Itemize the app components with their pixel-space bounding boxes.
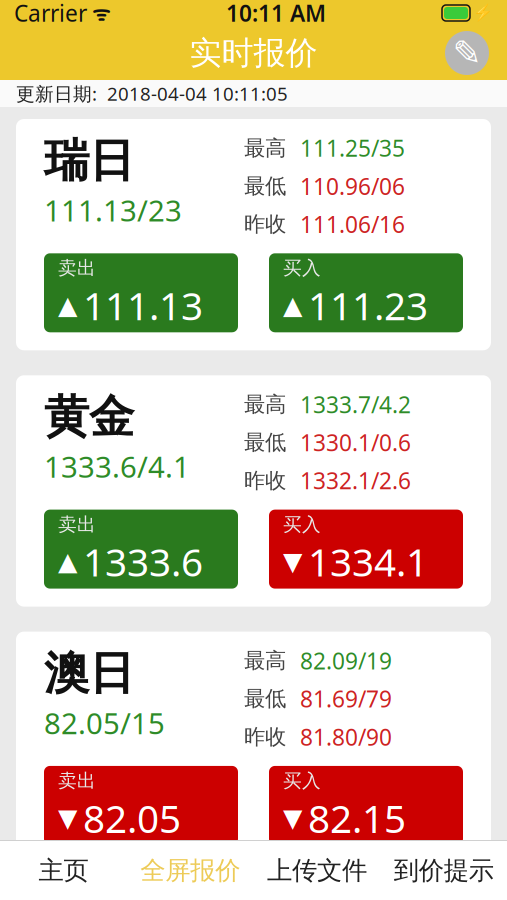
staticText: 10:11 AM [226,0,326,28]
staticText: 1332.1/2.6 [300,465,411,496]
staticText: ▼ [58,803,77,832]
staticText: 最高 [244,648,286,674]
staticText: 卖出 [58,257,96,280]
staticText: 上传文件 [267,855,367,886]
staticText: 82.09/19 [300,646,392,676]
button[interactable]: 全屏报价 [127,841,254,900]
staticText: ⚡ [473,4,493,22]
staticText: ▼ [283,803,302,832]
staticText: 1333.6/4.1 [44,447,190,486]
button[interactable]: 买入 [269,253,463,332]
button[interactable]: 卖出 [44,510,238,589]
staticText: 买入 [283,513,321,536]
staticText: 卖出 [58,513,96,536]
staticText: 到价提示 [394,855,494,886]
staticText: 买入 [283,769,321,792]
staticText: 卖出 [58,769,96,792]
staticText: ✎ [452,33,481,73]
staticText: 81.69/79 [300,684,392,714]
staticText: 111.23 [308,280,428,331]
staticText: ᯤ [87,0,110,26]
staticText: 瑞日 [44,133,134,189]
staticText: 最低 [244,173,286,199]
staticText: 1330.1/0.6 [300,427,411,457]
button[interactable]: 卖出 [44,766,238,845]
staticText: 澳日 [44,646,134,701]
staticText: 最低 [244,429,286,456]
staticText: 最高 [244,391,286,417]
button[interactable]: 买入 [269,510,463,589]
staticText: 111.06/16 [300,209,405,239]
button[interactable]: 主页 [0,841,127,900]
staticText: 1333.6 [83,536,203,587]
staticText: 昨收 [244,724,286,750]
staticText: Carrier [14,0,87,28]
staticText: 昨收 [244,467,286,494]
staticText: ▲ [58,291,77,320]
staticText: 买入 [283,257,321,280]
button[interactable]: 买入 [269,766,463,845]
staticText: 82.15 [308,792,406,843]
staticText: 111.25/35 [300,133,405,163]
button[interactable]: 到价提示 [380,841,507,900]
staticText: 81.80/90 [300,722,392,752]
staticText: 昨收 [244,211,286,237]
staticText: 111.13 [83,280,203,331]
staticText: 最低 [244,686,286,712]
staticText: 最高 [244,135,286,161]
staticText: 全屏报价 [140,855,240,886]
button[interactable]: 卖出 [44,253,238,332]
staticText: ▲ [283,291,302,320]
staticText: 82.05/15 [44,703,165,742]
staticText: 82.05 [83,792,181,843]
staticText: 1333.7/4.2 [300,389,411,419]
button[interactable]: 上传文件 [253,841,380,900]
staticText: 主页 [38,855,88,886]
staticText: 1334.1 [308,536,428,587]
staticText: ▼ [283,547,302,576]
staticText: 111.13/23 [44,191,182,230]
staticText: 110.96/06 [300,171,405,201]
staticText: 黄金 [44,389,134,445]
staticText: ▲ [58,547,77,576]
button[interactable]: 编辑 [445,31,489,75]
staticText: 实时报价 [189,33,317,73]
staticText: 更新日期: 2018-04-04 10:11:05 [16,81,288,106]
